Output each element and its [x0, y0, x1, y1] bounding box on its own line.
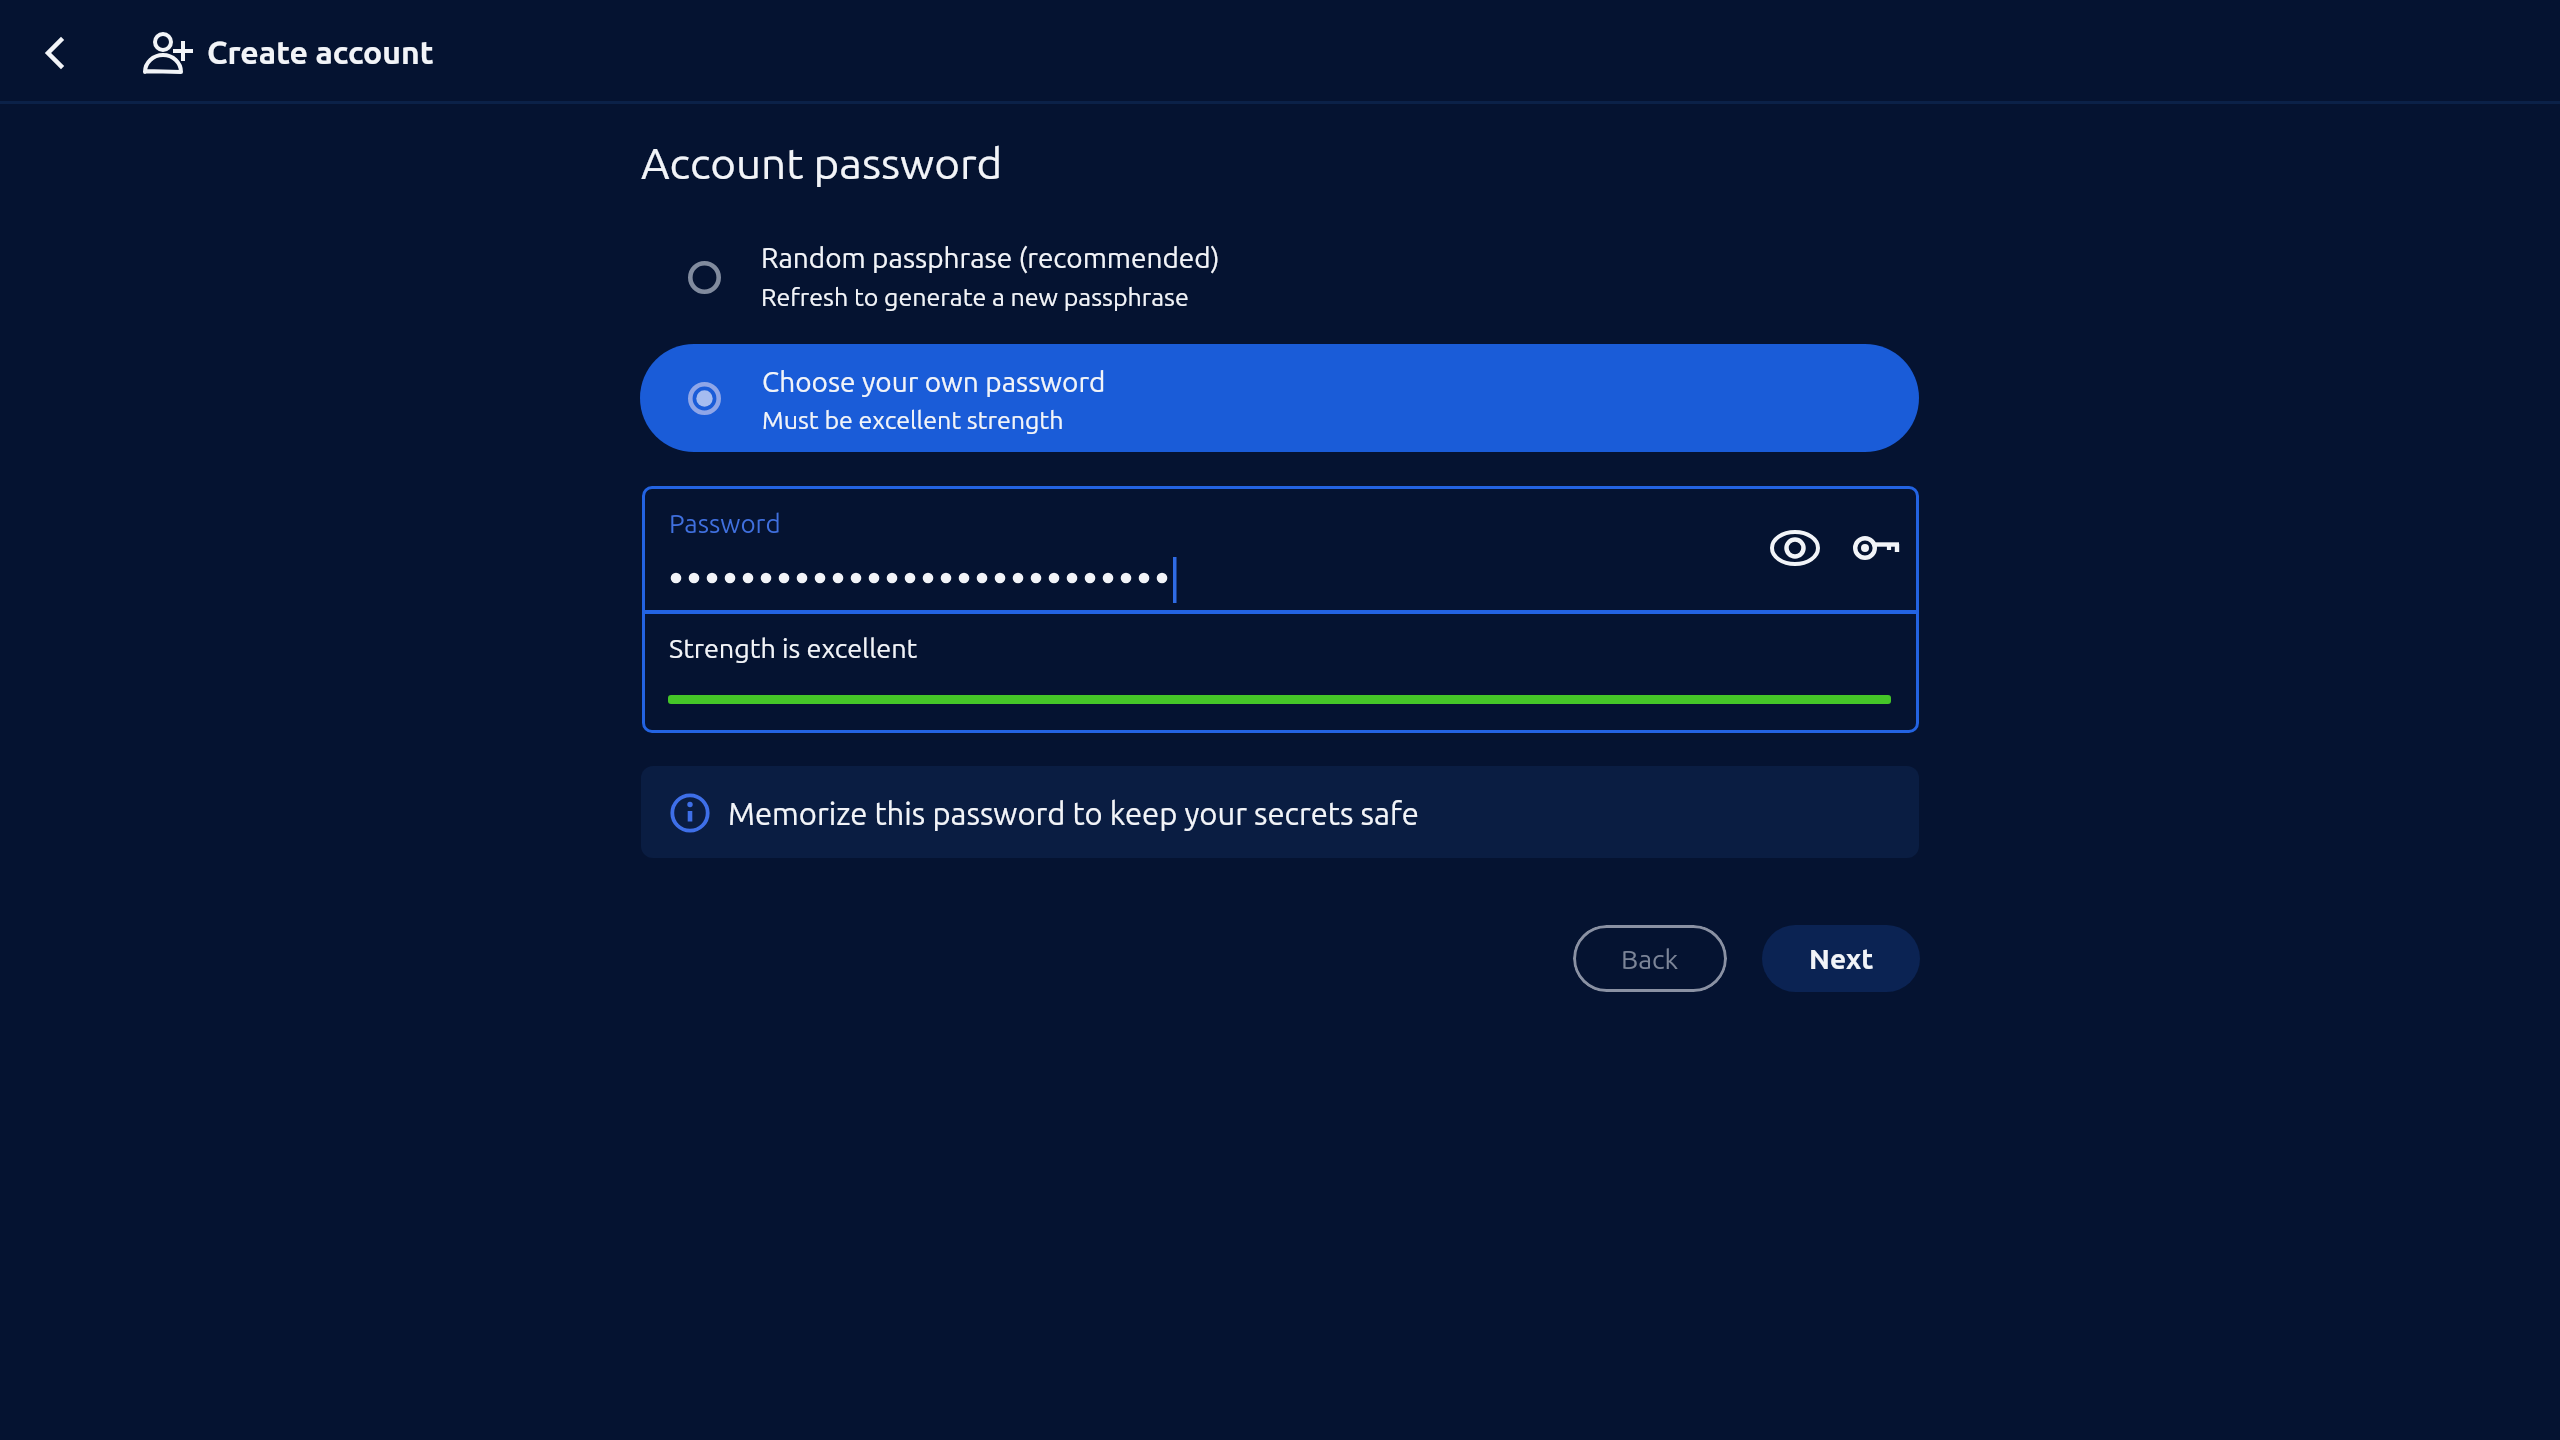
button[interactable]: [1765, 518, 1825, 578]
staticText: Back: [1621, 944, 1679, 974]
button[interactable]: Next: [1762, 925, 1920, 992]
staticText: Account password: [641, 138, 1003, 187]
staticText: Must be excellent strength: [762, 406, 1064, 434]
staticText: Password: [669, 509, 781, 538]
button[interactable]: Choose your own password: [640, 344, 1919, 452]
button[interactable]: [1840, 518, 1902, 580]
staticText: Random passphrase (recommended): [761, 242, 1220, 273]
staticText: Create account: [207, 34, 434, 70]
button[interactable]: [25, 22, 85, 82]
staticText: Strength is excellent: [669, 633, 918, 663]
button[interactable]: Back: [1573, 925, 1727, 992]
button[interactable]: Random passphrase (recommended): [640, 236, 1920, 326]
staticText: Memorize this password to keep your secr…: [728, 796, 1419, 831]
staticText: Refresh to generate a new passphrase: [761, 283, 1189, 311]
staticText: Next: [1809, 943, 1874, 974]
staticText: Choose your own password: [762, 366, 1106, 397]
